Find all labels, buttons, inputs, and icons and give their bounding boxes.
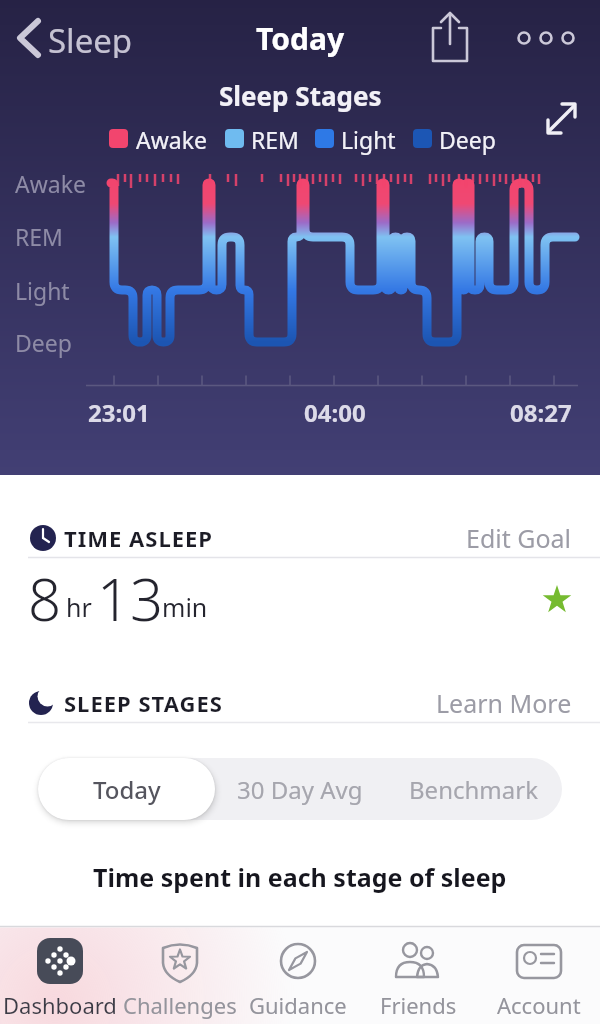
- staticText: Sleep: [48, 18, 133, 58]
- button[interactable]: [360, 928, 480, 1024]
- staticText: 23:01: [88, 396, 150, 429]
- staticText: min: [162, 590, 208, 624]
- button[interactable]: [424, 8, 476, 68]
- button[interactable]: 30 Day Avg: [215, 758, 385, 820]
- staticText: Awake: [136, 124, 207, 155]
- staticText: 8: [28, 559, 62, 638]
- button[interactable]: [538, 96, 584, 142]
- staticText: Challenges: [123, 990, 237, 1020]
- staticText: 30 Day Avg: [237, 773, 363, 806]
- staticText: 08:27: [510, 396, 572, 429]
- staticText: Time spent in each stage of sleep: [93, 860, 507, 894]
- staticText: Edit Goal: [466, 521, 572, 555]
- staticText: SLEEP STAGES: [64, 688, 223, 718]
- button[interactable]: [0, 928, 120, 1024]
- staticText: 04:00: [304, 396, 366, 429]
- staticText: Deep: [439, 124, 496, 155]
- staticText: Light: [15, 275, 70, 306]
- staticText: Awake: [15, 168, 86, 199]
- staticText: Benchmark: [409, 773, 538, 806]
- button[interactable]: Today: [38, 758, 215, 820]
- button[interactable]: [240, 928, 360, 1024]
- staticText: REM: [251, 124, 299, 155]
- button[interactable]: Benchmark: [385, 758, 562, 820]
- staticText: 13: [97, 559, 164, 638]
- staticText: Today: [93, 773, 161, 806]
- staticText: Friends: [380, 990, 457, 1020]
- staticText: REM: [15, 221, 63, 252]
- staticText: Deep: [15, 327, 72, 358]
- button[interactable]: [8, 12, 138, 64]
- button[interactable]: [508, 18, 580, 58]
- button[interactable]: Learn More: [372, 683, 572, 723]
- button[interactable]: Edit Goal: [372, 518, 572, 558]
- staticText: Account: [497, 990, 581, 1020]
- staticText: Light: [341, 124, 396, 155]
- staticText: hr: [66, 590, 92, 624]
- staticText: Learn More: [436, 686, 572, 720]
- button[interactable]: [120, 928, 240, 1024]
- staticText: Sleep Stages: [219, 78, 382, 113]
- staticText: Dashboard: [3, 990, 117, 1020]
- staticText: Today: [256, 18, 345, 58]
- button[interactable]: [480, 928, 600, 1024]
- staticText: TIME ASLEEP: [64, 523, 213, 553]
- staticText: Guidance: [249, 990, 347, 1020]
